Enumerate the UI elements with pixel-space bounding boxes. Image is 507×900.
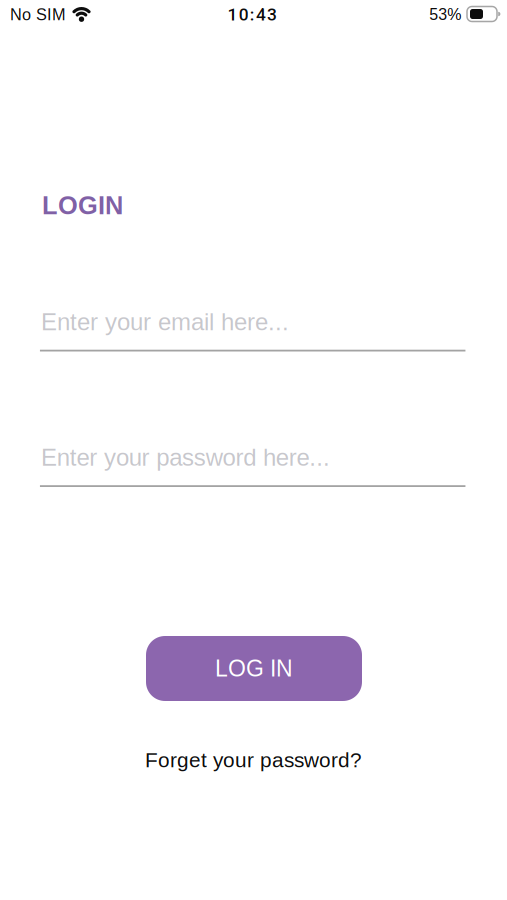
button[interactable]: LOG IN [146,636,362,701]
staticText: Enter your password here... [41,444,330,471]
staticText: 10:43 [228,4,277,25]
staticText: LOG IN [215,656,293,681]
staticText: No SIM [10,5,66,24]
button[interactable]: Forget your password? [145,748,362,772]
button[interactable]: Enter your password here [40,444,465,487]
staticText: LOGIN [42,191,123,220]
staticText: Forget your password? [145,748,362,772]
staticText: Enter your email here... [41,308,289,335]
staticText: 53% [429,6,461,23]
button[interactable]: Enter your email here [40,308,465,351]
